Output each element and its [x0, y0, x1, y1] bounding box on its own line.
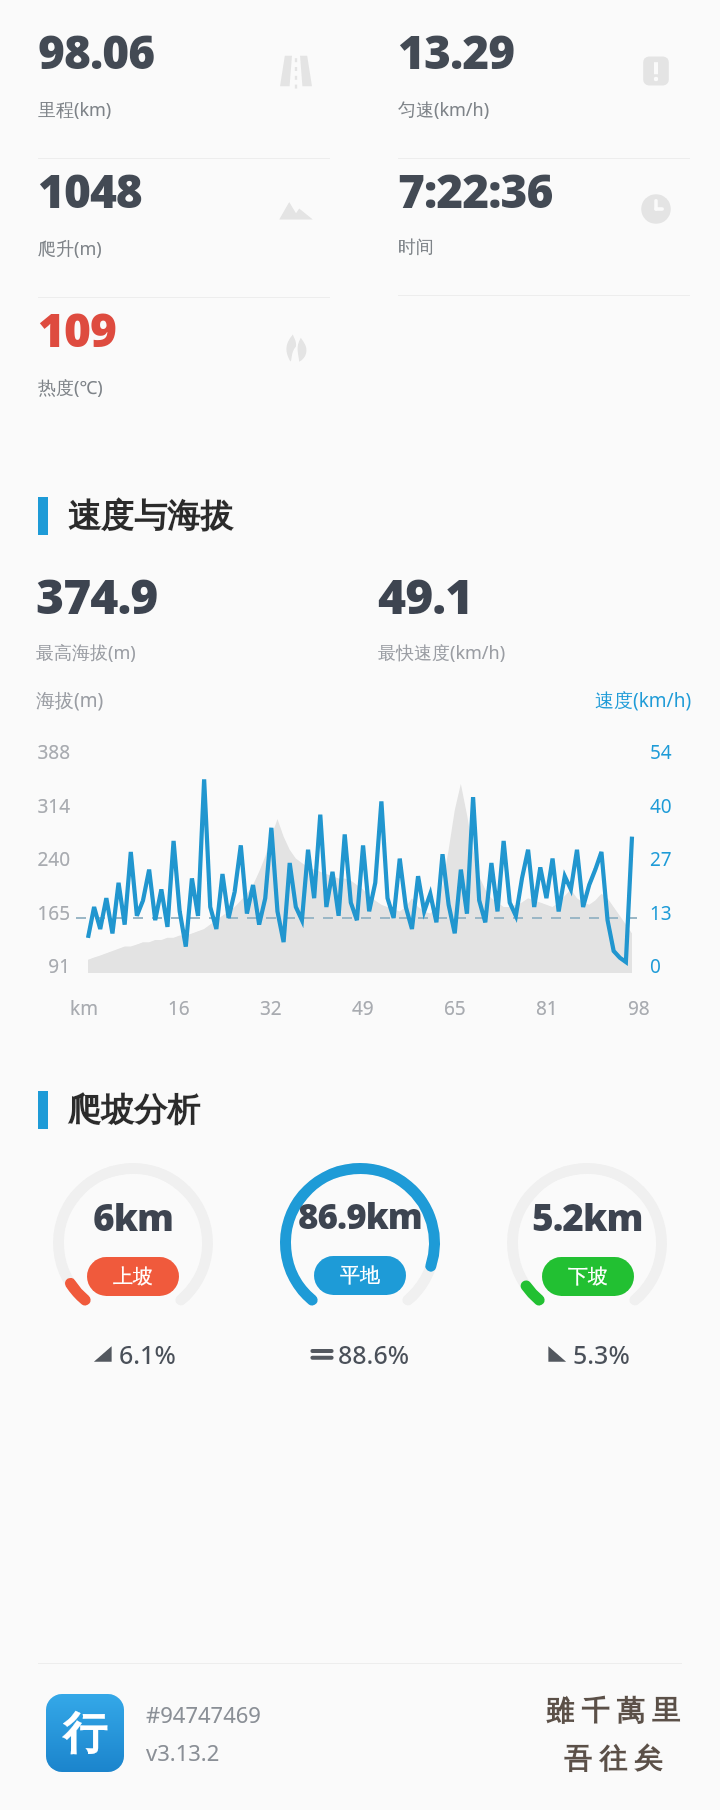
staticText: 54 — [650, 739, 672, 765]
staticText: v3.13.2 — [146, 1737, 220, 1767]
staticText: 13 — [650, 900, 672, 926]
staticText: 7:22:36 — [398, 159, 553, 222]
staticText: 40 — [650, 793, 672, 819]
staticText: 雖 千 萬 里 — [546, 1690, 680, 1728]
staticText: 爬坡分析 — [68, 1089, 200, 1131]
staticText: 65 — [444, 995, 466, 1021]
staticText: 0 — [650, 953, 661, 979]
staticText: 91 — [48, 953, 70, 979]
staticText: 行 — [63, 1706, 107, 1761]
button[interactable]: 速度与海拔 — [38, 495, 720, 537]
staticText: 吾 往 矣 — [564, 1738, 663, 1776]
button[interactable]: 109 — [0, 298, 360, 437]
staticText: 最高海拔(m) — [36, 640, 136, 665]
button[interactable]: 爬坡分析 — [38, 1089, 720, 1131]
button[interactable]: 5.2km — [479, 1161, 695, 1371]
staticText: 32 — [260, 995, 282, 1021]
staticText: 98.06 — [38, 20, 155, 83]
button[interactable]: 7:22:36 — [360, 159, 720, 296]
staticText: 5.3% — [573, 1337, 630, 1371]
staticText: km — [70, 995, 98, 1021]
staticText: 81 — [536, 995, 558, 1021]
staticText: 86.9km — [298, 1192, 422, 1240]
staticText: 388 — [37, 739, 70, 765]
staticText: 下坡 — [568, 1264, 608, 1289]
staticText: 49 — [352, 995, 374, 1021]
staticText: 240 — [37, 846, 70, 872]
staticText: 速度(km/h) — [595, 687, 692, 713]
staticText: 314 — [37, 793, 70, 819]
staticText: 海拔(m) — [36, 687, 104, 713]
staticText: 13.29 — [398, 20, 515, 83]
staticText: 49.1 — [378, 563, 473, 628]
staticText: 6km — [93, 1191, 174, 1241]
staticText: 匀速(km/h) — [398, 97, 490, 122]
staticText: #94747469 — [146, 1699, 261, 1729]
staticText: 最快速度(km/h) — [378, 640, 506, 665]
staticText: 374.9 — [36, 563, 158, 628]
button[interactable]: 98.06 — [0, 20, 360, 159]
staticText: 爬升(m) — [38, 236, 102, 261]
button[interactable]: 1048 — [0, 159, 360, 298]
staticText: 16 — [168, 995, 190, 1021]
staticText: 里程(km) — [38, 97, 112, 122]
staticText: 时间 — [398, 236, 434, 259]
staticText: 1048 — [38, 159, 142, 222]
staticText: 165 — [37, 900, 70, 926]
staticText: 88.6% — [338, 1337, 410, 1371]
staticText: 平地 — [340, 1263, 380, 1288]
button[interactable]: 13.29 — [360, 20, 720, 159]
button[interactable]: 86.9km — [252, 1161, 468, 1371]
staticText: 6.1% — [119, 1337, 176, 1371]
button[interactable]: App icon — [46, 1694, 124, 1772]
staticText: 上坡 — [113, 1264, 153, 1289]
staticText: 98 — [628, 995, 650, 1021]
staticText: 速度与海拔 — [68, 495, 233, 537]
staticText: 27 — [650, 846, 672, 872]
staticText: 109 — [38, 298, 116, 361]
staticText: 热度(℃) — [38, 375, 103, 400]
staticText: 5.2km — [532, 1191, 643, 1241]
button[interactable]: 6km — [25, 1161, 241, 1371]
